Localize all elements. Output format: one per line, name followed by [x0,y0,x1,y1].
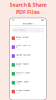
staticText: 1.2 MB [16,48,20,50]
staticText: PDF Files [16,8,40,15]
staticText: Summary_Q3.pdf [16,81,28,83]
staticText: 860 KB [16,56,21,58]
staticText: Search & Share [9,1,46,8]
button[interactable]: Contract_v2.pdf [9,69,46,78]
staticText: ⋮ [41,81,44,84]
staticText: Invoice_2024.pdf [16,36,28,38]
staticText: 2.4 MB [16,38,20,40]
staticText: ⋮ [41,72,44,75]
staticText: ⋮ [41,46,44,49]
button[interactable]: Meeting_Notes.pdf [9,52,46,60]
button[interactable]: Summary_Q3.pdf [9,78,46,87]
staticText: 5.6 MB [16,92,20,94]
button[interactable]: Project_Report.pdf [9,43,46,52]
button[interactable]: Archive_2023.pdf [9,87,46,96]
staticText: Contract_v2.pdf [16,72,29,74]
staticText: 540 KB [16,74,21,76]
staticText: ▮ ▮ ▮ [41,19,44,21]
button[interactable]: Invoice_2024.pdf [9,34,46,43]
staticText: ⋮ [41,54,44,57]
staticText: Archive_2023.pdf [16,90,29,91]
staticText: 9:41 [12,19,15,21]
staticText: Budget_Plan.pdf [16,63,28,65]
staticText: ⋮ [41,37,44,40]
button[interactable]: Budget_Plan.pdf [9,60,46,69]
staticText: My Documents [22,23,33,25]
staticText: Project_Report.pdf [16,44,30,48]
staticText: ⋮ [41,90,44,93]
staticText: ⋮ [41,63,44,66]
staticText: 1.8 MB [16,83,20,85]
staticText: Search PDF Files [14,29,26,31]
staticText: 3.1 MB [16,65,20,67]
staticText: Meeting_Notes.pdf [16,54,30,56]
